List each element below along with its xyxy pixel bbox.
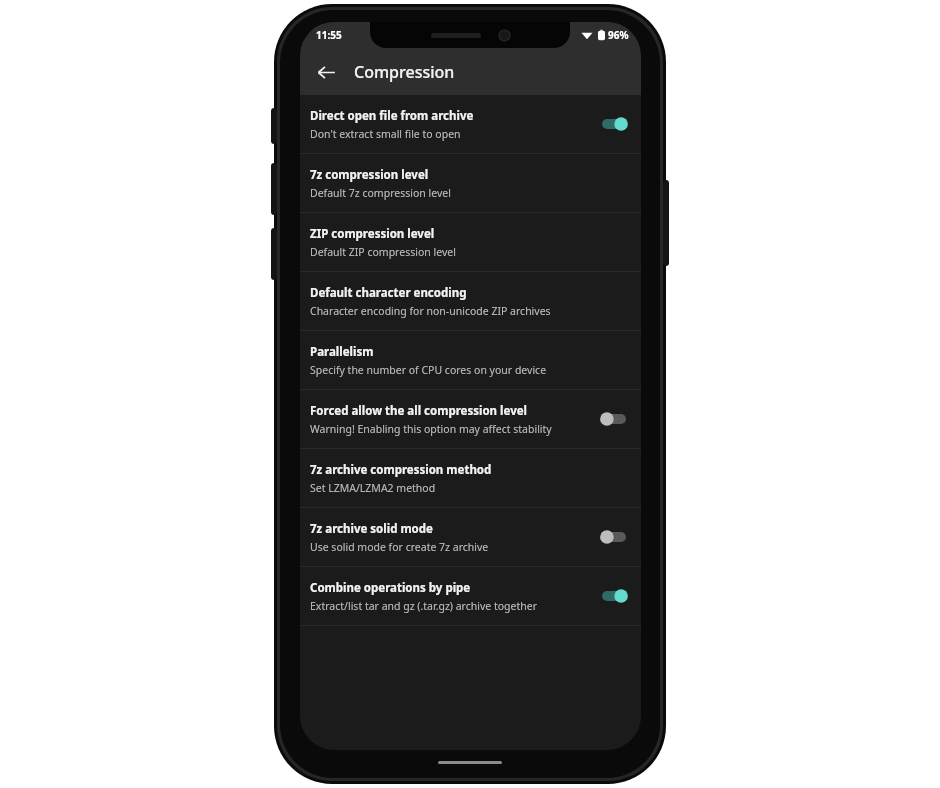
staticText: Compression <box>354 61 455 83</box>
staticText: Warning! Enabling this option may affect… <box>310 422 552 436</box>
staticText: Parallelism <box>310 344 374 360</box>
staticText: Don't extract small file to open <box>310 127 461 141</box>
button[interactable]: Forced allow the all compression level <box>300 390 641 448</box>
button[interactable]: Toggle on <box>599 113 629 135</box>
staticText: 7z archive compression method <box>310 462 492 478</box>
staticText: Specify the number of CPU cores on your … <box>310 363 547 377</box>
staticText: 96% <box>608 28 629 42</box>
staticText: Default ZIP compression level <box>310 245 456 259</box>
staticText: Combine operations by pipe <box>310 580 471 596</box>
button[interactable]: 7z archive solid mode <box>300 508 641 566</box>
button[interactable]: Toggle off <box>599 526 629 548</box>
button[interactable]: Combine operations by pipe <box>300 567 641 625</box>
button[interactable]: ZIP compression level <box>300 213 641 271</box>
staticText: Use solid mode for create 7z archive <box>310 540 489 554</box>
staticText: 11:55 <box>316 28 342 42</box>
button[interactable]: Default character encoding <box>300 272 641 330</box>
staticText: 7z compression level <box>310 167 429 183</box>
staticText: Default 7z compression level <box>310 186 451 200</box>
staticText: Default character encoding <box>310 285 467 301</box>
staticText: ZIP compression level <box>310 226 435 242</box>
staticText: Character encoding for non-unicode ZIP a… <box>310 304 551 318</box>
button[interactable]: Toggle on <box>599 585 629 607</box>
button[interactable]: Direct open file from archive <box>300 95 641 153</box>
button[interactable]: 7z archive compression method <box>300 449 641 507</box>
staticText: 7z archive solid mode <box>310 521 433 537</box>
button[interactable]: 7z compression level <box>300 154 641 212</box>
staticText: Direct open file from archive <box>310 108 474 124</box>
staticText: Extract/list tar and gz (.tar.gz) archiv… <box>310 599 538 613</box>
staticText: Set LZMA/LZMA2 method <box>310 481 436 495</box>
button[interactable]: Parallelism <box>300 331 641 389</box>
staticText: Forced allow the all compression level <box>310 403 527 419</box>
button[interactable]: Toggle off <box>599 408 629 430</box>
button[interactable]: Back <box>306 52 346 92</box>
